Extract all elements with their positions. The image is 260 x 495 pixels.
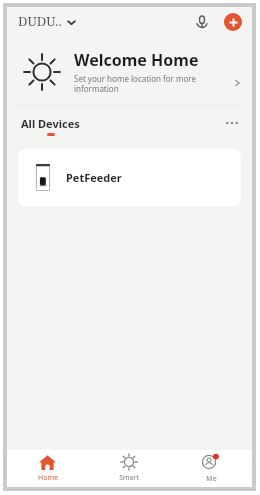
staticText: All Devices (21, 116, 80, 131)
staticText: Home (38, 473, 58, 483)
staticText: Welcome Home (74, 49, 199, 71)
staticText: Smart (119, 473, 139, 483)
staticText: Set your home location for more informat… (74, 73, 196, 94)
button[interactable]: All Devices (21, 116, 80, 136)
button[interactable]: More options (222, 113, 242, 133)
button[interactable]: Smart (88, 450, 170, 487)
button[interactable]: DUDU.. (18, 12, 76, 30)
button[interactable]: Home (7, 450, 88, 487)
button[interactable]: Add device (224, 13, 242, 31)
staticText: PetFeeder (66, 170, 122, 185)
button[interactable]: Welcome Home (7, 38, 252, 105)
button[interactable]: Voice assistant (190, 10, 214, 34)
button[interactable]: PetFeeder (18, 149, 241, 206)
staticText: Me (206, 474, 217, 484)
button[interactable]: Me (170, 450, 252, 487)
staticText: DUDU.. (18, 12, 62, 30)
